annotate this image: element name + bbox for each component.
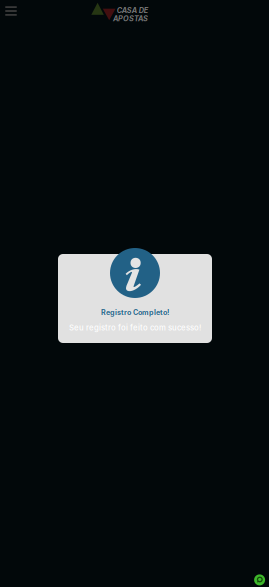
button[interactable]: Chat on WhatsApp <box>254 574 266 586</box>
staticText: Seu registro foi feito com sucesso! <box>69 323 201 332</box>
staticText: APOSTAS <box>113 14 148 23</box>
staticText: CASA DE <box>117 6 148 15</box>
button[interactable]: Open menu <box>0 1 22 21</box>
staticText: Registro Completo! <box>101 308 169 317</box>
